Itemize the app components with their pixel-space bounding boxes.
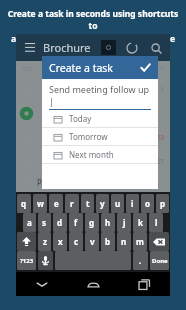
button[interactable]: Jul 1	[22, 77, 164, 101]
button[interactable]: j	[117, 213, 131, 232]
button[interactable]: h	[101, 213, 115, 232]
button[interactable]: Back	[16, 272, 68, 296]
staticText: d	[57, 217, 63, 228]
staticText: Brochure	[43, 40, 91, 55]
staticText: j	[123, 217, 126, 228]
staticText: h	[105, 217, 111, 228]
button[interactable]: Recents	[119, 272, 170, 296]
staticText: Create a task	[49, 61, 113, 75]
button[interactable]: a	[23, 213, 36, 232]
button[interactable]: l	[149, 213, 163, 232]
button[interactable]: k	[133, 213, 147, 232]
staticText: w	[37, 198, 44, 209]
staticText: c	[74, 236, 79, 247]
staticText: o	[145, 198, 150, 209]
button[interactable]: y	[96, 194, 109, 213]
button[interactable]: t	[81, 194, 94, 213]
button[interactable]: Backspace	[149, 232, 169, 251]
other: Confirm	[140, 62, 151, 73]
staticText: Act	[22, 64, 33, 74]
staticText: Today	[69, 113, 92, 124]
staticText: add assignees, labels, priority, and due…	[6, 33, 180, 57]
staticText: p	[160, 198, 166, 209]
staticText: r	[70, 198, 74, 209]
button[interactable]: Jun 23	[22, 125, 164, 149]
staticText: v	[90, 236, 95, 247]
staticText: f	[74, 217, 78, 228]
button[interactable]: u	[111, 194, 124, 213]
button[interactable]: Menu	[22, 40, 38, 56]
staticText: t	[86, 198, 90, 209]
staticText: Jul 1	[151, 85, 164, 94]
button[interactable]: o	[141, 194, 154, 213]
staticText: Create a task in seconds using shortcuts…	[6, 8, 180, 32]
staticText: s	[42, 217, 47, 228]
staticText: y	[100, 198, 105, 209]
button[interactable]: Refresh	[124, 40, 140, 56]
button[interactable]: Purchase images	[22, 173, 164, 192]
staticText: Jun 23	[145, 133, 164, 142]
button[interactable]: c	[69, 232, 83, 251]
button[interactable]: w	[33, 194, 47, 213]
button[interactable]: i	[126, 194, 139, 213]
button[interactable]: z	[38, 232, 51, 251]
button[interactable]: s	[38, 213, 51, 232]
button[interactable]	[22, 101, 164, 125]
button[interactable]: v	[85, 232, 99, 251]
staticText: k	[138, 217, 143, 228]
button[interactable]: r	[65, 194, 79, 213]
button[interactable]: e	[49, 194, 63, 213]
button[interactable]: Home	[68, 272, 119, 296]
staticText: Jun 27	[145, 157, 164, 166]
button[interactable]: p	[156, 194, 169, 213]
button[interactable]: .	[133, 251, 148, 270]
button[interactable]: Next month	[54, 146, 158, 163]
button[interactable]: ?123	[17, 251, 36, 270]
button[interactable]: Filter	[101, 40, 116, 55]
staticText: a	[27, 217, 32, 228]
staticText: Purchase images	[37, 177, 101, 188]
staticText: e	[54, 198, 59, 209]
button[interactable]: Shift	[17, 232, 36, 251]
staticText: b	[105, 236, 111, 247]
staticText: g	[89, 217, 95, 228]
staticText: m	[136, 236, 144, 247]
button[interactable]: Search	[148, 40, 164, 56]
staticText: Tomorrow	[69, 131, 108, 142]
staticText: l	[155, 217, 158, 228]
button[interactable]: Voice input	[38, 251, 53, 270]
staticText: Send meeting follow up |	[49, 83, 151, 107]
button[interactable]: g	[85, 213, 99, 232]
button[interactable]: m	[133, 232, 147, 251]
staticText: Done	[152, 257, 168, 265]
button[interactable]: Today	[54, 110, 158, 127]
staticText: .	[139, 255, 142, 266]
button[interactable]: Done	[150, 251, 169, 270]
staticText: Next month	[69, 149, 114, 160]
staticText: n	[121, 236, 127, 247]
staticText: ?123	[20, 257, 34, 265]
staticText: u	[115, 198, 121, 209]
staticText: z	[43, 236, 47, 247]
button[interactable]: n	[117, 232, 131, 251]
button[interactable]: x	[53, 232, 67, 251]
staticText: i	[131, 198, 134, 209]
staticText: x	[58, 236, 63, 247]
staticText: v	[160, 64, 164, 74]
button[interactable]: Jun 27	[22, 149, 164, 173]
button[interactable]: f	[69, 213, 83, 232]
button[interactable]: q	[17, 194, 31, 213]
staticText: q	[21, 198, 27, 209]
button[interactable]: b	[101, 232, 115, 251]
button[interactable]: Tomorrow	[54, 128, 158, 145]
button[interactable]: d	[53, 213, 67, 232]
button[interactable]: Create a task	[49, 56, 151, 79]
